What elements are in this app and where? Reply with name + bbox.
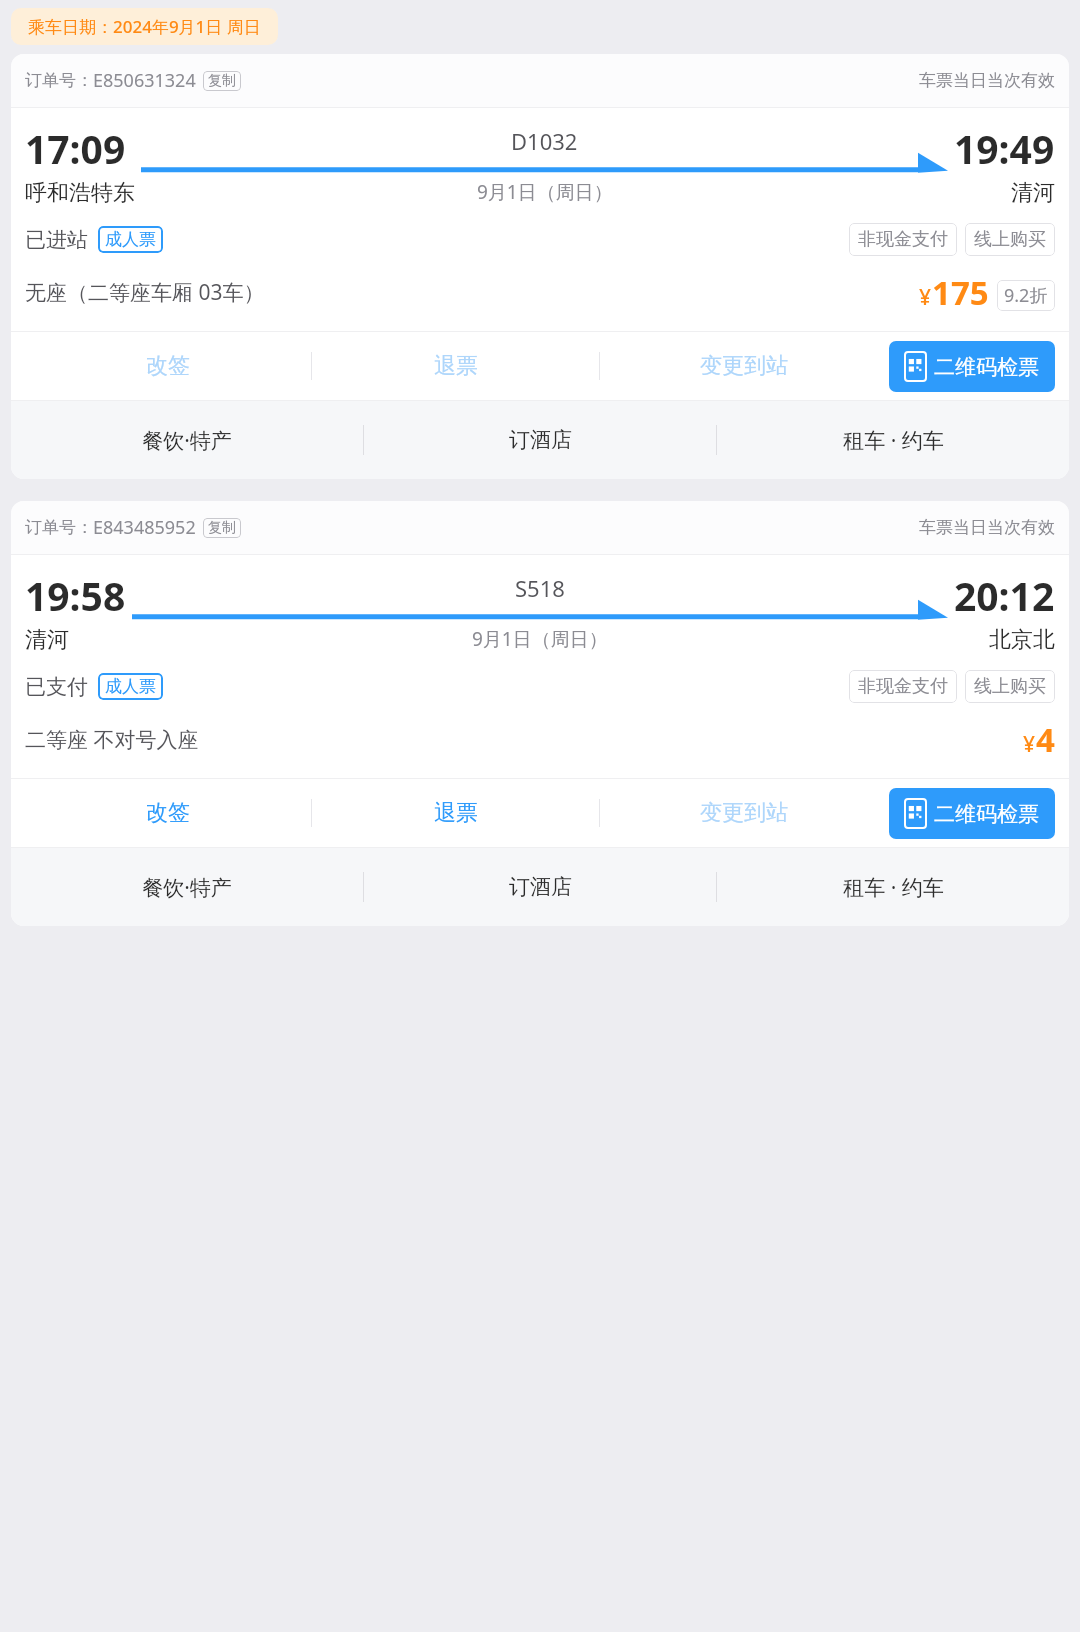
staticText: 乘车日期：2024年9月1日 周日 bbox=[28, 15, 261, 38]
staticText: 非现金支付 bbox=[858, 228, 948, 251]
staticText: 车票当日当次有效 bbox=[919, 517, 1055, 538]
staticText: 复制 bbox=[208, 519, 236, 537]
button[interactable]: 餐饮·特产 bbox=[11, 426, 363, 455]
button[interactable]: 退票 bbox=[312, 352, 599, 380]
staticText: 二维码检票 bbox=[934, 354, 1039, 380]
staticText: 呼和浩特东 bbox=[25, 179, 135, 207]
staticText: 成人票 bbox=[105, 676, 156, 697]
staticText: 成人票 bbox=[105, 229, 156, 250]
staticText: 餐饮·特产 bbox=[142, 873, 232, 902]
staticText: 变更到站 bbox=[700, 799, 788, 827]
staticText: D1032 bbox=[511, 126, 578, 156]
staticText: 9月1日（周日） bbox=[472, 626, 608, 652]
button[interactable]: 餐饮·特产 bbox=[11, 873, 363, 902]
button[interactable]: 二维码检票 bbox=[889, 341, 1055, 392]
staticText: 改签 bbox=[146, 799, 190, 827]
button[interactable]: 订单号： bbox=[11, 501, 1069, 554]
button[interactable]: 租车 · 约车 bbox=[717, 426, 1069, 455]
staticText: 19:58 bbox=[25, 569, 126, 622]
button[interactable]: 成人票 bbox=[98, 226, 163, 253]
staticText: 9.2折 bbox=[1004, 283, 1048, 308]
button[interactable]: 退票 bbox=[312, 799, 599, 827]
button[interactable]: 订单号： bbox=[11, 54, 1069, 107]
staticText: E843485952 bbox=[93, 515, 196, 540]
staticText: 已进站 bbox=[25, 227, 88, 253]
staticText: 变更到站 bbox=[700, 352, 788, 380]
staticText: E850631324 bbox=[93, 68, 196, 93]
button[interactable]: 复制 bbox=[203, 518, 241, 538]
staticText: 租车 · 约车 bbox=[843, 873, 944, 902]
button[interactable]: 复制 bbox=[203, 71, 241, 91]
staticText: 租车 · 约车 bbox=[843, 426, 944, 455]
staticText: 清河 bbox=[1011, 179, 1055, 207]
staticText: 车票当日当次有效 bbox=[919, 70, 1055, 91]
staticText: ¥ bbox=[919, 283, 932, 312]
staticText: 订酒店 bbox=[509, 427, 572, 453]
button[interactable]: 成人票 bbox=[98, 673, 163, 700]
staticText: 4 bbox=[1036, 717, 1055, 762]
button[interactable]: 改签 bbox=[25, 352, 311, 380]
staticText: 改签 bbox=[146, 352, 190, 380]
button[interactable]: 租车 · 约车 bbox=[717, 873, 1069, 902]
staticText: S518 bbox=[515, 573, 565, 603]
staticText: 餐饮·特产 bbox=[142, 426, 232, 455]
staticText: 175 bbox=[932, 270, 989, 315]
staticText: 非现金支付 bbox=[858, 675, 948, 698]
staticText: 无座（二等座车厢 03车） bbox=[25, 278, 265, 307]
staticText: 北京北 bbox=[989, 626, 1055, 654]
button[interactable]: 订酒店 bbox=[364, 874, 716, 900]
staticText: 二维码检票 bbox=[934, 801, 1039, 827]
staticText: 19:49 bbox=[954, 122, 1055, 175]
staticText: 订单号： bbox=[25, 517, 93, 538]
staticText: 退票 bbox=[434, 799, 478, 827]
staticText: ¥ bbox=[1023, 730, 1036, 759]
staticText: 复制 bbox=[208, 72, 236, 90]
staticText: 线上购买 bbox=[974, 228, 1046, 251]
staticText: 订单号： bbox=[25, 70, 93, 91]
staticText: 退票 bbox=[434, 352, 478, 380]
other: 二维码检票 bbox=[905, 352, 926, 381]
staticText: 清河 bbox=[25, 626, 69, 654]
staticText: 20:12 bbox=[954, 569, 1055, 622]
staticText: 9月1日（周日） bbox=[477, 179, 613, 205]
staticText: 二等座 不对号入座 bbox=[25, 725, 199, 754]
button[interactable]: 订酒店 bbox=[364, 427, 716, 453]
button[interactable]: 乘车日期：2024年9月1日 周日 bbox=[11, 8, 278, 45]
button[interactable]: 改签 bbox=[25, 799, 311, 827]
button[interactable]: 变更到站 bbox=[600, 799, 887, 827]
other: 二维码检票 bbox=[905, 799, 926, 828]
staticText: 已支付 bbox=[25, 674, 88, 700]
staticText: 订酒店 bbox=[509, 874, 572, 900]
button[interactable]: 变更到站 bbox=[600, 352, 887, 380]
button[interactable]: 二维码检票 bbox=[889, 788, 1055, 839]
staticText: 线上购买 bbox=[974, 675, 1046, 698]
staticText: 17:09 bbox=[25, 122, 126, 175]
